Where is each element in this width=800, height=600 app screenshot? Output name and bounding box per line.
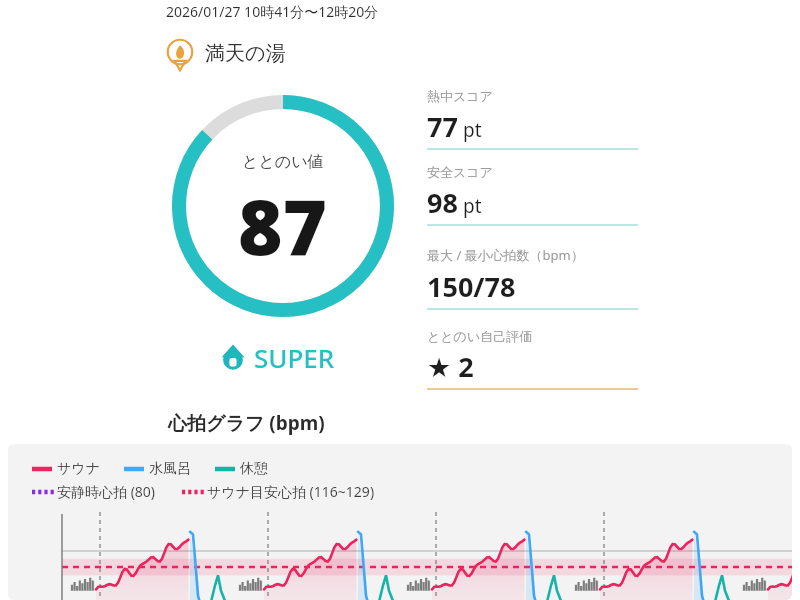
button[interactable]: 安全スコア xyxy=(427,164,638,226)
staticText: ととのい自己評価 xyxy=(427,328,533,344)
staticText: 2026/01/27 10時41分〜12時20分 xyxy=(166,2,379,21)
staticText: SUPER xyxy=(254,340,335,375)
staticText: 休憩 xyxy=(240,460,268,478)
staticText: 77 xyxy=(427,108,458,145)
button[interactable]: 熱中スコア xyxy=(427,88,638,150)
staticText: ★ 2 xyxy=(427,348,474,385)
other: Sauna venue xyxy=(163,36,197,70)
staticText: 98 xyxy=(427,184,458,221)
button[interactable]: 最大 / 最小心拍数（bpm） xyxy=(427,246,638,310)
staticText: 心拍グラフ (bpm) xyxy=(168,410,325,436)
staticText: pt xyxy=(458,193,482,219)
staticText: pt xyxy=(458,117,482,143)
staticText: 最大 / 最小心拍数（bpm） xyxy=(427,246,584,264)
button[interactable]: サウナ xyxy=(8,444,792,600)
staticText: サウナ目安心拍 (116~129) xyxy=(207,482,375,501)
staticText: ととのい値 xyxy=(242,152,324,172)
button[interactable]: Super rank xyxy=(218,340,335,375)
button[interactable]: Sauna venue xyxy=(163,36,286,70)
staticText: 87 xyxy=(238,174,328,278)
staticText: 安全スコア xyxy=(427,164,493,180)
staticText: 150/78 xyxy=(427,268,516,305)
staticText: 水風呂 xyxy=(149,460,191,478)
staticText: 熱中スコア xyxy=(427,88,493,104)
staticText: 安静時心拍 (80) xyxy=(57,482,156,501)
other: Super rank xyxy=(218,343,248,373)
button[interactable]: ととのい自己評価 xyxy=(427,328,638,390)
staticText: サウナ xyxy=(57,460,100,478)
staticText: 満天の湯 xyxy=(205,41,286,66)
